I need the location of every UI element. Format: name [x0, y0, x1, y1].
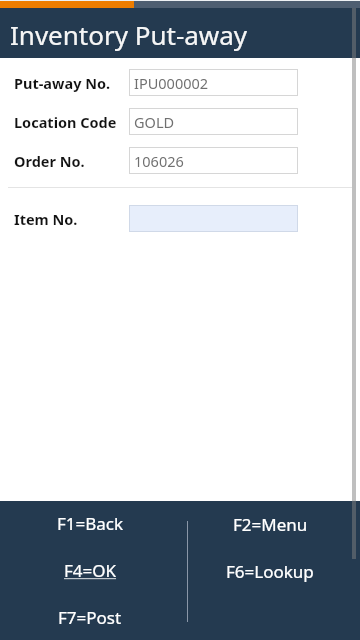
- button[interactable]: F1=Back: [0, 509, 180, 537]
- staticText: Location Code: [14, 112, 117, 132]
- button[interactable]: [129, 205, 298, 232]
- staticText: F2=Menu: [233, 513, 308, 536]
- button[interactable]: F4=OK: [0, 556, 180, 584]
- staticText: GOLD: [134, 112, 175, 132]
- button[interactable]: IPU000002: [129, 69, 298, 96]
- button[interactable]: F2=Menu: [180, 510, 360, 538]
- staticText: Order No.: [14, 151, 85, 171]
- button[interactable]: 106026: [129, 147, 298, 174]
- staticText: IPU000002: [134, 73, 209, 93]
- staticText: F6=Lookup: [226, 560, 314, 583]
- staticText: F4=OK: [64, 559, 117, 582]
- button[interactable]: F6=Lookup: [180, 557, 360, 585]
- staticText: F7=Post: [58, 606, 122, 629]
- staticText: Inventory Put-away: [10, 17, 248, 52]
- staticText: F1=Back: [57, 512, 124, 535]
- staticText: Item No.: [14, 209, 78, 229]
- button[interactable]: GOLD: [129, 108, 298, 135]
- staticText: Put-away No.: [14, 73, 111, 93]
- staticText: 106026: [134, 151, 184, 171]
- button[interactable]: F7=Post: [0, 603, 180, 631]
